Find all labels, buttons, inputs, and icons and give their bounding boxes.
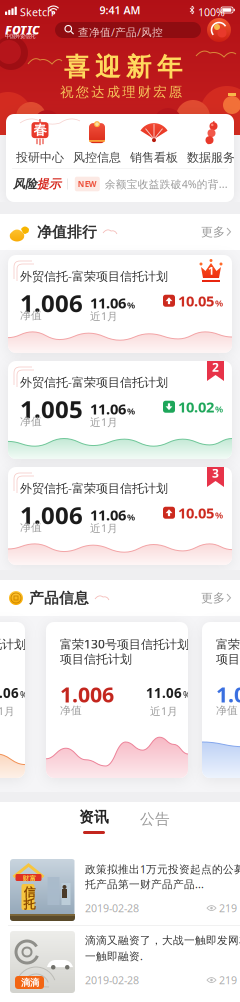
staticText: 3 [212,465,219,481]
staticText: 政策拟推出1万元投资起点的公募信 [85,862,240,876]
staticText: 财富 [22,874,36,883]
staticText: 风险 [13,177,37,191]
staticText: 1.005 [20,393,83,425]
staticText: 近1月 [90,309,118,323]
staticText: 富荣130号项目信托计划 [60,636,189,652]
staticText: 余额宝收益跌破4%的背后详情背后... [105,177,237,191]
staticText: 2 [212,359,219,375]
button[interactable]: 风险 [13,169,229,199]
button[interactable]: 富荣131号项目信托计划 [202,622,240,778]
staticText: 净值 [60,704,82,717]
staticText: 提示 [37,177,61,191]
staticText: 219 [219,901,237,915]
staticText: % [127,299,135,311]
staticText: 10.05 [178,503,214,522]
button[interactable]: 数据服务 [185,120,237,164]
staticText: 信 [23,885,35,900]
staticText: 资讯 [79,808,109,826]
button[interactable]: 搜索 [55,22,201,38]
staticText: 1.006 [60,680,114,708]
button[interactable]: 更多 [186,580,232,616]
staticText: 外贸信托-富荣项目信托计划 [20,374,168,390]
staticText: 11.06 [90,505,126,524]
button[interactable]: 风控信息 [71,120,123,164]
button[interactable]: 更多 [186,214,232,250]
staticText: 托产品第一财产品产品... [85,877,204,891]
staticText: 滴滴 [21,977,39,988]
staticText: 滴滴又融资了，大战一触即发网友 [85,934,240,947]
button[interactable]: 公告 [125,802,185,836]
staticText: % [127,405,135,417]
staticText: NEW [78,179,97,189]
staticText: 中国外贸信托 [5,33,35,40]
staticText: 2019-02-28 [85,973,139,987]
staticText: 一触即融资. [85,949,143,963]
staticText: 项目信托计划 [60,652,132,667]
staticText: 风控信息 [73,150,121,165]
staticText: 外贸信托-富荣项目信托计划 [20,268,168,284]
staticText: 销售看板 [130,150,178,165]
staticText: FOTIC [5,22,40,38]
staticText: 1.006 [20,287,83,319]
button[interactable]: 春 [14,120,66,164]
staticText: 净值 [20,415,42,428]
staticText: 净值 [20,521,42,534]
staticText: 10.05 [178,291,214,310]
button[interactable]: 资讯 [64,804,124,838]
staticText: 净值 [20,309,42,322]
staticText: 11.06 [90,399,126,418]
staticText: 近1月 [90,415,118,429]
staticText: 春 [33,122,46,138]
staticText: 净值 [216,704,238,717]
staticText: 11.06 [0,684,19,702]
button[interactable]: 活动 [207,18,231,42]
button[interactable]: 外贸信托-富荣项目信托计划 [8,255,232,353]
staticText: 产品信息 [29,589,89,607]
staticText: 9:41 AM [99,3,140,17]
staticText: 100% [198,5,225,19]
staticText: 近1月 [0,704,15,718]
staticText: 近1月 [150,704,178,718]
staticText: 1.006 [216,680,240,708]
staticText: 外贸信托-富荣项目信托计划 [20,480,168,496]
button[interactable]: 财富 [0,838,240,925]
staticText: 富荣129号项目信托计划 [0,636,26,652]
button[interactable]: 滴滴 [0,926,240,1002]
button[interactable]: 富荣129号项目信托计划 [0,622,25,778]
staticText: 更多 [201,591,225,605]
staticText: 219 [219,973,237,987]
staticText: 公告 [140,810,170,828]
staticText: 2019-02-28 [85,901,139,915]
staticText: 投研中心 [16,150,64,165]
staticText: Sketch [20,5,54,19]
staticText: 更多 [201,225,225,239]
staticText: 净值排行 [37,223,97,241]
staticText: % [20,688,28,701]
staticText: 近1月 [90,521,118,535]
button[interactable]: 外贸信托-富荣项目信托计划 [8,467,232,565]
staticText: 喜迎新年 [64,51,182,82]
staticText: 祝您达成理财宏愿 [60,84,182,100]
staticText: 项目信托计划 [216,652,240,667]
staticText: 11.06 [146,684,182,702]
button[interactable]: 销售看板 [128,120,180,164]
staticText: 1.006 [20,499,83,531]
button[interactable]: 富荣130号项目信托计划 [46,622,188,778]
staticText: 富荣131号项目信托计划 [216,636,240,652]
staticText: 10.02 [178,397,214,416]
staticText: 11.06 [90,293,126,312]
staticText: % [215,297,223,309]
staticText: % [127,511,135,523]
button[interactable]: 外贸信托-富荣项目信托计划 [8,361,232,459]
staticText: 1 [208,263,214,278]
staticText: 数据服务 [187,150,235,165]
staticText: % [215,509,223,521]
staticText: % [183,688,191,701]
staticText: % [215,403,223,415]
staticText: 托 [23,897,35,912]
staticText: 查净值/产品/风控 [78,25,163,39]
